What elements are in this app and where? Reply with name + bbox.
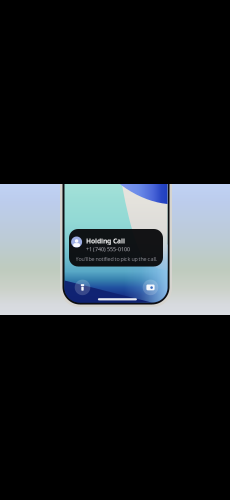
staticText: You'll be notified to pick up the call. [75, 255, 156, 263]
staticText: +1 (740) 555-0100 [86, 246, 130, 253]
button[interactable]: Camera [143, 280, 158, 295]
button[interactable]: Holding Call [69, 229, 163, 266]
button[interactable]: Flashlight [75, 280, 90, 295]
staticText: Holding Call [86, 236, 125, 245]
